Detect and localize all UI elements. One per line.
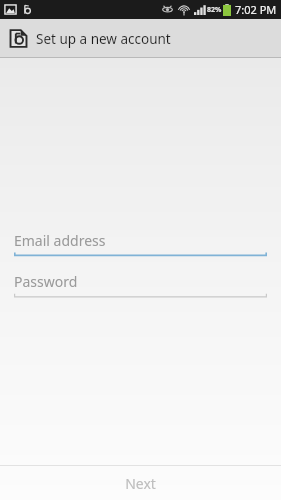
- staticText: 7:02 PM: [235, 2, 277, 17]
- staticText: Password: [14, 272, 78, 291]
- button[interactable]: Next: [0, 466, 281, 500]
- button[interactable]: Email address: [14, 229, 267, 257]
- staticText: Email address: [14, 231, 106, 250]
- button[interactable]: Password: [14, 270, 267, 298]
- staticText: Set up a new account: [36, 30, 171, 48]
- staticText: 82%: [207, 5, 222, 15]
- button[interactable]: Set up a new account: [0, 19, 281, 57]
- staticText: Next: [125, 474, 156, 493]
